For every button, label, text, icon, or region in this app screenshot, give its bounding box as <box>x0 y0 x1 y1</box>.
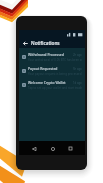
staticText: Tap to set up your wallet and start trad… <box>28 86 82 90</box>
staticText: Your payout request is being processed n… <box>28 72 82 76</box>
button[interactable]: Welcome Crypto Wallet <box>19 78 85 92</box>
button[interactable]: Recent apps <box>66 144 75 153</box>
staticText: Welcome Crypto Wallet <box>28 80 73 85</box>
staticText: Withdrawal Processed <box>28 52 73 57</box>
button[interactable]: Home <box>48 144 57 153</box>
staticText: Your withdrawal of 0.05 BTC has been sen… <box>28 58 82 62</box>
button[interactable]: Withdrawal Processed <box>19 50 85 64</box>
staticText: 1d ago <box>73 81 82 85</box>
button[interactable]: Back <box>22 40 28 46</box>
staticText: 2h ago <box>73 53 82 57</box>
button[interactable]: Back <box>29 144 38 153</box>
staticText: Payout Requested <box>28 66 73 71</box>
staticText: Notifications <box>31 40 60 46</box>
button[interactable]: Payout Requested <box>19 64 85 78</box>
staticText: 5h ago <box>73 67 82 71</box>
